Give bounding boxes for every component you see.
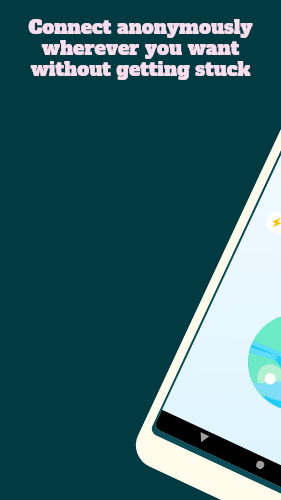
button[interactable]: Quick connect <box>263 209 281 236</box>
staticText: Connect anonymously wherever you want wi… <box>0 14 281 82</box>
